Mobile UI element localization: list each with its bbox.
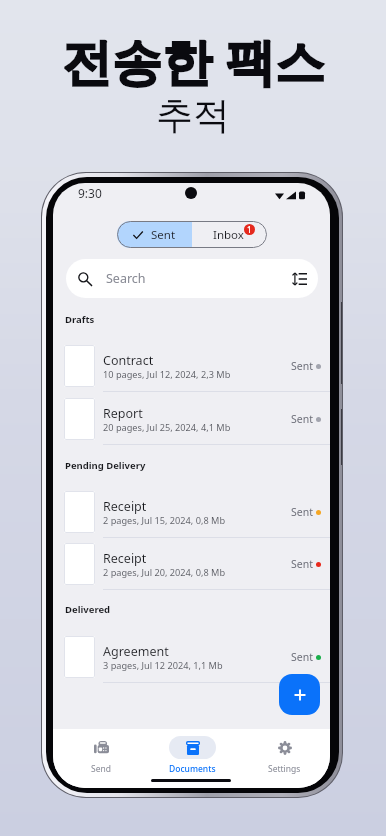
staticText: Drafts [65, 313, 95, 326]
staticText: Pending Delivery [65, 459, 146, 472]
staticText: 2 pages, Jul 15, 2024, 0,8 Mb [103, 514, 226, 527]
button[interactable]: Agreement [53, 630, 330, 683]
staticText: Sent [291, 412, 313, 426]
staticText: 추적 [156, 92, 230, 139]
staticText: 20 pages, Jul 25, 2024, 4,1 Mb [103, 421, 231, 434]
button[interactable]: Contract [53, 339, 330, 392]
staticText: Documents [169, 763, 216, 775]
staticText: Sent [291, 650, 313, 664]
staticText: Settings [268, 763, 301, 775]
button[interactable]: Sent [117, 221, 192, 248]
staticText: Search [106, 270, 146, 287]
staticText: Report [103, 405, 143, 422]
staticText: Sent [151, 227, 176, 243]
staticText: Receipt [103, 498, 147, 515]
button[interactable]: Documents [147, 729, 237, 777]
staticText: Receipt [103, 550, 147, 567]
other: Sort [294, 273, 307, 285]
button[interactable]: Inbox [192, 221, 267, 248]
staticText: 10 pages, Jul 12, 2024, 2,3 Mb [103, 368, 231, 381]
button[interactable]: Report [53, 392, 330, 445]
staticText: 9:30 [78, 185, 102, 201]
staticText: Sent [291, 505, 313, 519]
button[interactable]: New fax [279, 674, 320, 715]
button[interactable]: Receipt [53, 537, 330, 590]
staticText: Send [91, 763, 111, 775]
staticText: Sent [291, 359, 313, 373]
staticText: 전송한 팩스 [62, 27, 325, 95]
staticText: Agreement [103, 643, 169, 660]
staticText: Sent [291, 557, 313, 571]
staticText: 2 pages, Jul 20, 2024, 0,8 Mb [103, 566, 226, 579]
button[interactable]: Send [56, 729, 146, 777]
staticText: Delivered [65, 603, 111, 616]
staticText: Inbox [213, 227, 244, 243]
button[interactable]: Search [66, 259, 318, 298]
staticText: 1 [247, 224, 252, 235]
button[interactable]: Settings [239, 729, 329, 777]
staticText: Contract [103, 352, 154, 369]
staticText: 3 pages, Jul 12 2024, 1,1 Mb [103, 659, 223, 672]
button[interactable]: Receipt [53, 485, 330, 538]
